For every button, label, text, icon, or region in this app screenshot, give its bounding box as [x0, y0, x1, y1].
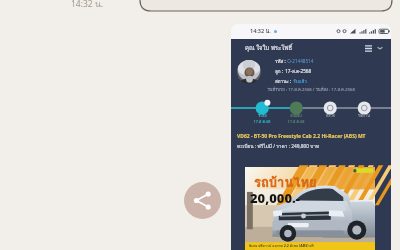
staticText: ทะเบียน : ฟรีไม่มี / ราคา : 249,800 บาท: [237, 142, 320, 150]
staticText: สถานะ :: [275, 78, 292, 85]
staticText: ปิดงาน: [358, 113, 370, 119]
staticText: รถบ้านไทย: [254, 172, 317, 193]
staticText: 20,000.-: [250, 189, 300, 207]
button[interactable]: Menu: [362, 42, 375, 55]
staticText: VD62 - BT-50 Pro Freestyle Cab 2.2 Hi-Ra…: [237, 133, 366, 140]
staticText: 14:32 น.: [71, 0, 104, 11]
button[interactable]: More options: [375, 43, 385, 53]
staticText: รับรถ: [258, 113, 267, 119]
staticText: คุณ ใจใบ พระโพธิ์: [245, 43, 293, 53]
staticText: 17-ส.ค-68: [287, 119, 305, 125]
staticText: ส่งมอบ: [290, 113, 302, 119]
staticText: 14:32 น.: [250, 27, 271, 36]
staticText: 17-ส.ค-68: [253, 119, 271, 125]
staticText: วันที่รับรถ : 17-ส.ค-2568 / วันที่ส่ง : …: [231, 86, 391, 93]
staticText: O-21448514: [286, 58, 314, 64]
staticText: ลูก :: [275, 68, 284, 75]
button[interactable]: Share: [184, 182, 221, 219]
staticText: รหัส :: [275, 58, 286, 65]
staticText: ตรวจ: [326, 113, 335, 119]
staticText: รับแล้ว: [292, 78, 307, 85]
staticText: 17-ส.ค-2568: [284, 68, 312, 75]
staticText: พิเศษ ฟรีดาวน์ ออกรถ 2.2 ดีเซล (ABS) ฟรี: [249, 243, 314, 249]
